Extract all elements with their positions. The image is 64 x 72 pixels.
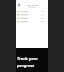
staticText: Workouts [27, 3, 38, 6]
staticText: this week [28, 6, 36, 8]
staticText: progress [17, 63, 35, 68]
staticText: Track your [17, 56, 38, 61]
button[interactable] [16, 9, 48, 12]
button[interactable] [16, 15, 48, 18]
button[interactable] [16, 12, 48, 15]
button[interactable]: Back [17, 3, 20, 6]
button[interactable] [16, 18, 48, 21]
